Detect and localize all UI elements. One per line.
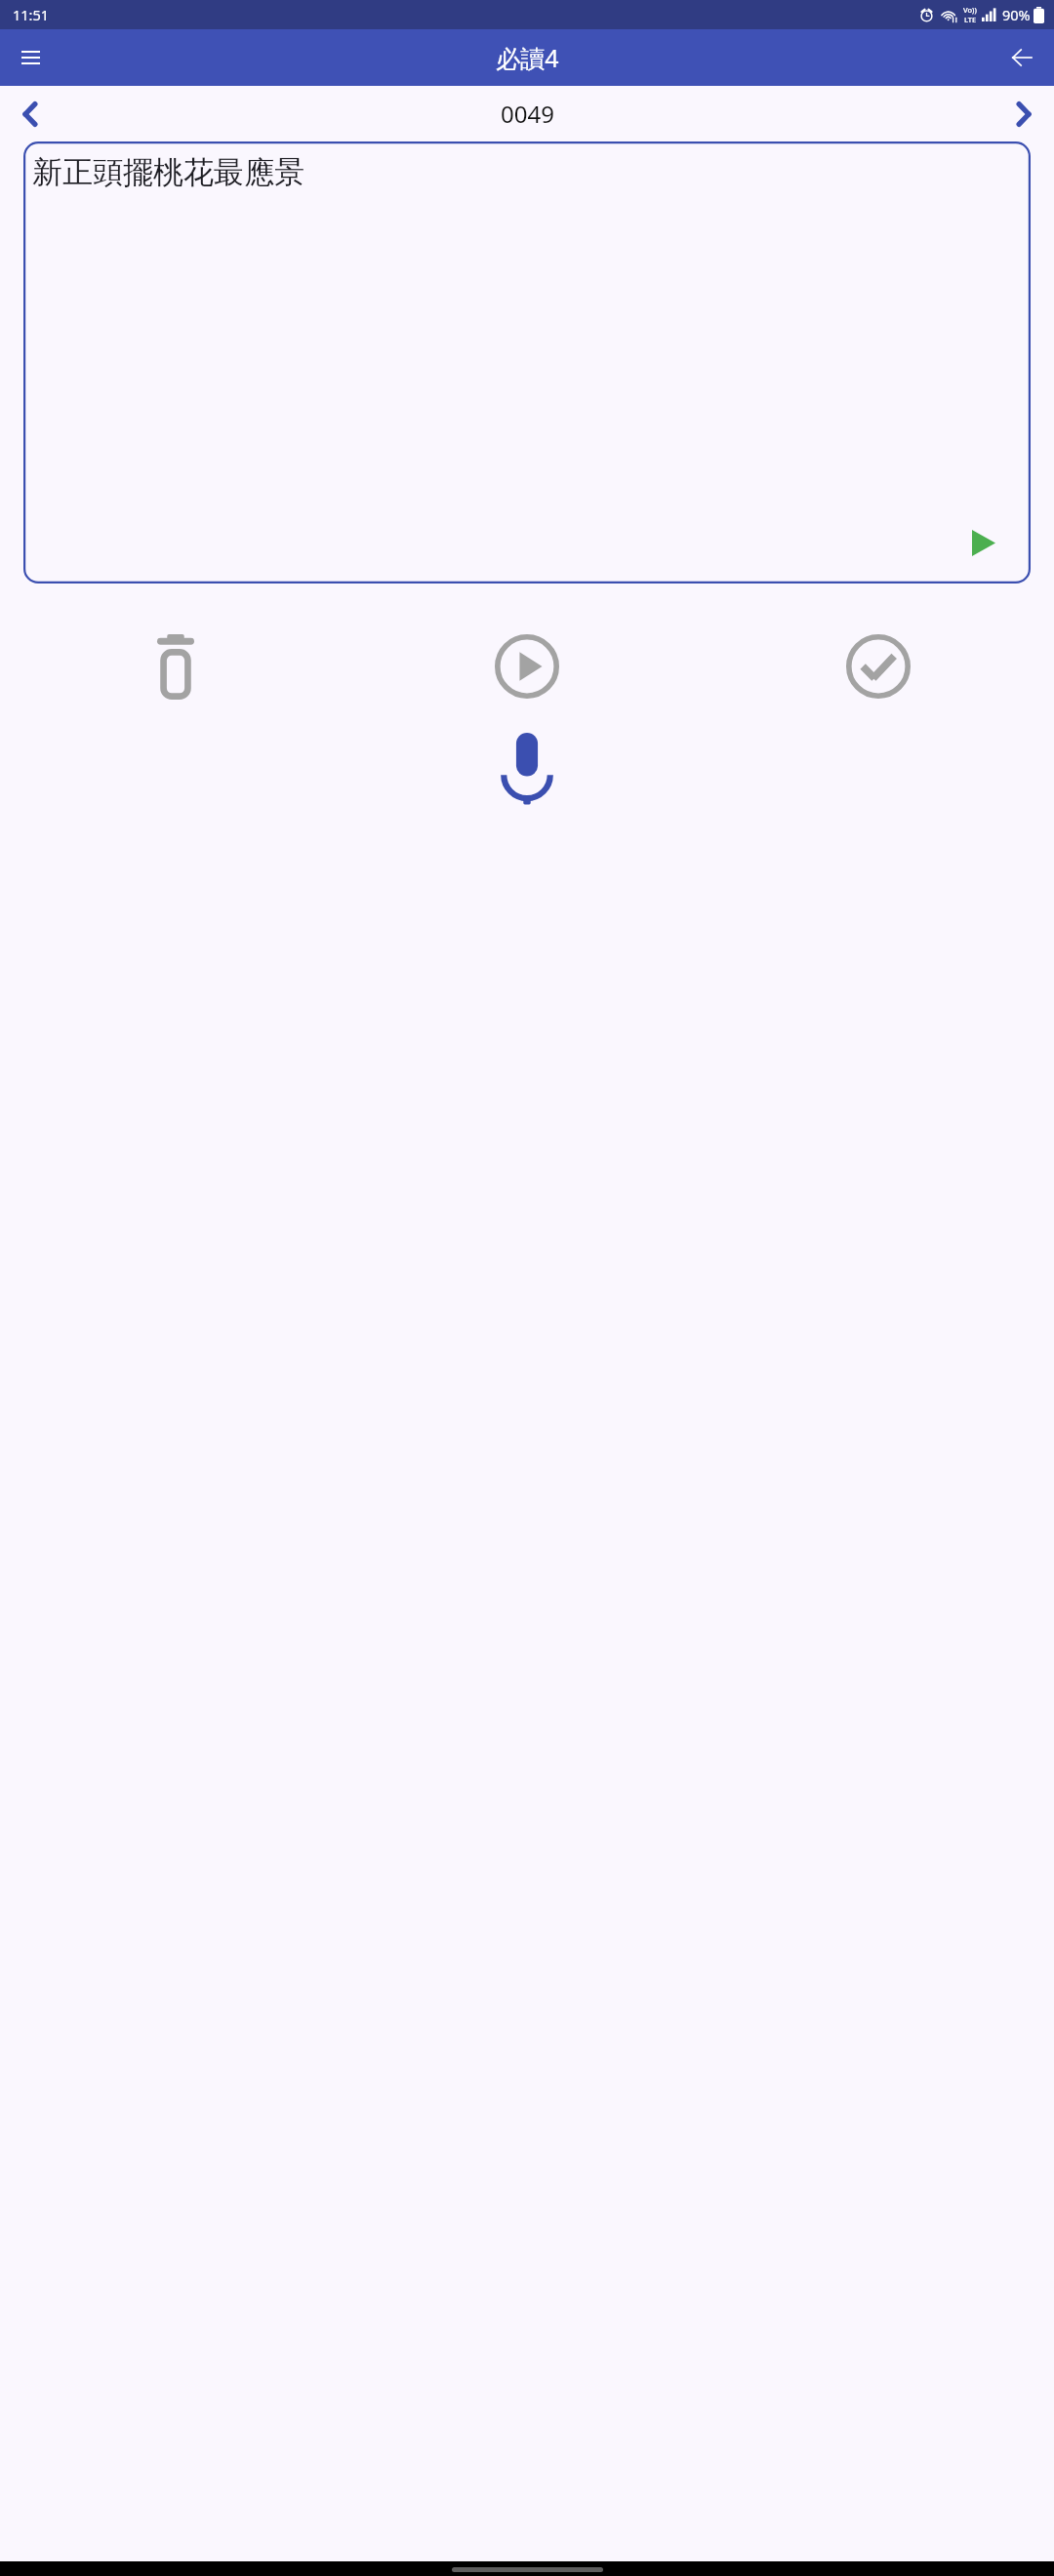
- button[interactable]: Previous: [8, 93, 51, 136]
- button[interactable]: 新正頭擺桃花最應景: [23, 141, 1031, 584]
- staticText: 0049: [501, 98, 554, 130]
- button[interactable]: Play: [351, 624, 703, 708]
- button[interactable]: Record: [482, 730, 572, 808]
- staticText: 90%: [1002, 5, 1031, 24]
- button[interactable]: Menu: [10, 37, 51, 78]
- staticText: 新正頭擺桃花最應景: [32, 153, 304, 191]
- button[interactable]: Next: [1003, 93, 1046, 136]
- staticText: Vo)): [963, 5, 977, 15]
- staticText: LTE: [964, 15, 977, 24]
- button[interactable]: Play phrase: [966, 525, 1001, 560]
- button[interactable]: Delete: [0, 624, 351, 708]
- button[interactable]: Confirm: [703, 624, 1054, 708]
- button[interactable]: Back: [999, 35, 1044, 80]
- staticText: 11:51: [13, 5, 50, 24]
- staticText: 必讀4: [496, 41, 559, 74]
